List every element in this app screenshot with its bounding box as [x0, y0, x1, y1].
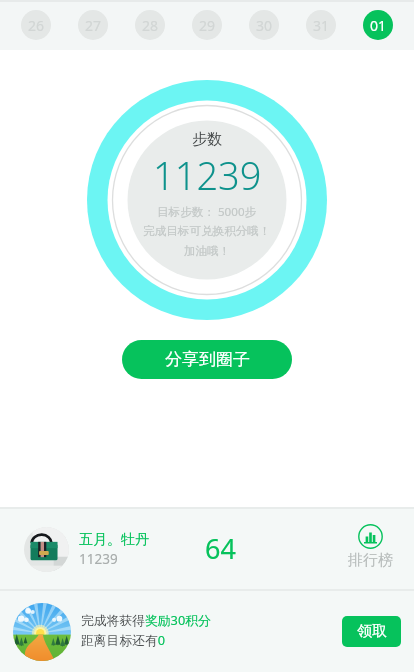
staticText: 领取: [357, 622, 387, 641]
button[interactable]: 27: [78, 10, 108, 40]
staticText: 29: [199, 16, 216, 35]
button[interactable]: 28: [135, 10, 165, 40]
button[interactable]: 26: [21, 10, 51, 40]
button[interactable]: 01: [363, 10, 393, 40]
staticText: 31: [313, 16, 330, 35]
staticText: 01: [370, 16, 387, 35]
staticText: 加油哦！: [184, 244, 231, 259]
button[interactable]: 30: [249, 10, 279, 40]
staticText: 28: [142, 16, 159, 35]
staticText: 11239: [79, 550, 118, 568]
button[interactable]: 领取: [342, 616, 401, 647]
button[interactable]: 五月。牡丹: [0, 509, 414, 589]
staticText: 30: [256, 16, 273, 35]
button[interactable]: 分享到圈子: [122, 340, 292, 379]
button[interactable]: 31: [306, 10, 336, 40]
staticText: 排行榜: [348, 551, 393, 570]
button[interactable]: 排行榜: [348, 524, 393, 570]
staticText: 完成目标可兑换积分哦！: [143, 224, 271, 239]
staticText: 距离目标还有0: [81, 631, 166, 648]
button[interactable]: 29: [192, 10, 222, 40]
staticText: 分享到圈子: [165, 349, 250, 370]
staticText: 目标步数： 5000步: [157, 204, 257, 220]
staticText: 26: [28, 16, 45, 35]
staticText: 64: [205, 530, 236, 567]
staticText: 27: [85, 16, 102, 35]
staticText: 完成将获得奖励30积分: [81, 611, 211, 628]
staticText: 步数: [192, 130, 222, 149]
staticText: 五月。牡丹: [79, 531, 149, 549]
staticText: 11239: [153, 149, 262, 201]
